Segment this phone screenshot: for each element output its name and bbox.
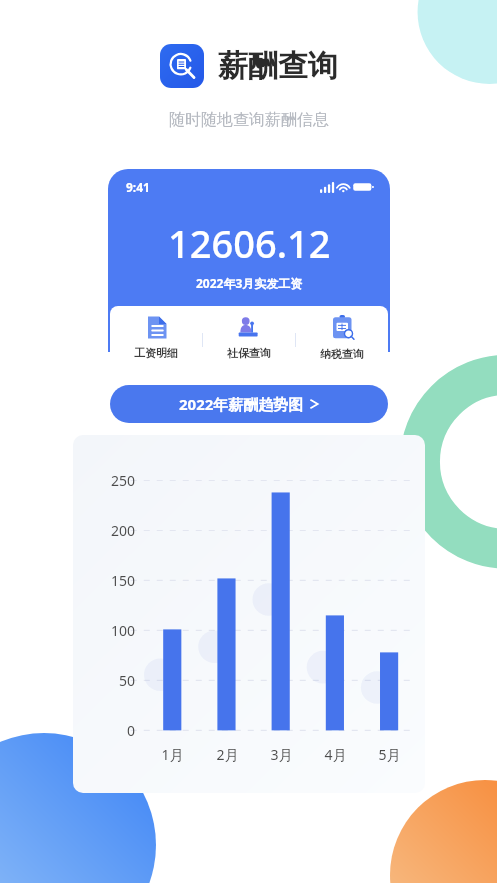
staticText: 5月 [378, 745, 401, 764]
staticText: 50 [118, 671, 135, 690]
staticText: 纳税查询 [320, 347, 364, 361]
staticText: 工资明细 [134, 346, 178, 360]
staticText: 4月 [324, 745, 347, 764]
staticText: 1月 [161, 745, 184, 764]
staticText: 100 [110, 621, 135, 640]
button[interactable]: 工资明细 [110, 306, 202, 373]
other: 社保查询 [236, 315, 263, 340]
staticText: 2022年3月实发工资 [196, 275, 303, 291]
other: 薪酬查询 应用图标 [160, 44, 204, 88]
other: 信号 无线网络 电量 [320, 181, 374, 193]
other: 纳税查询 [330, 315, 355, 341]
staticText: 2月 [216, 745, 239, 764]
staticText: 9:41 [126, 179, 150, 195]
staticText: 150 [110, 571, 135, 590]
staticText: 12606.12 [168, 217, 331, 269]
staticText: 2022年薪酬趋势图 [179, 394, 304, 414]
other: 工资明细 [144, 315, 169, 340]
button[interactable]: 社保查询 [203, 306, 295, 373]
staticText: 社保查询 [227, 346, 271, 360]
button[interactable]: 2022年薪酬趋势图 [110, 385, 388, 423]
staticText: 随时随地查询薪酬信息 [169, 110, 329, 130]
staticText: 薪酬查询 [218, 47, 338, 85]
button[interactable]: 纳税查询 [296, 306, 388, 373]
staticText: 0 [126, 721, 135, 740]
staticText: 3月 [270, 745, 293, 764]
staticText: 250 [110, 471, 135, 490]
staticText: 200 [110, 521, 135, 540]
